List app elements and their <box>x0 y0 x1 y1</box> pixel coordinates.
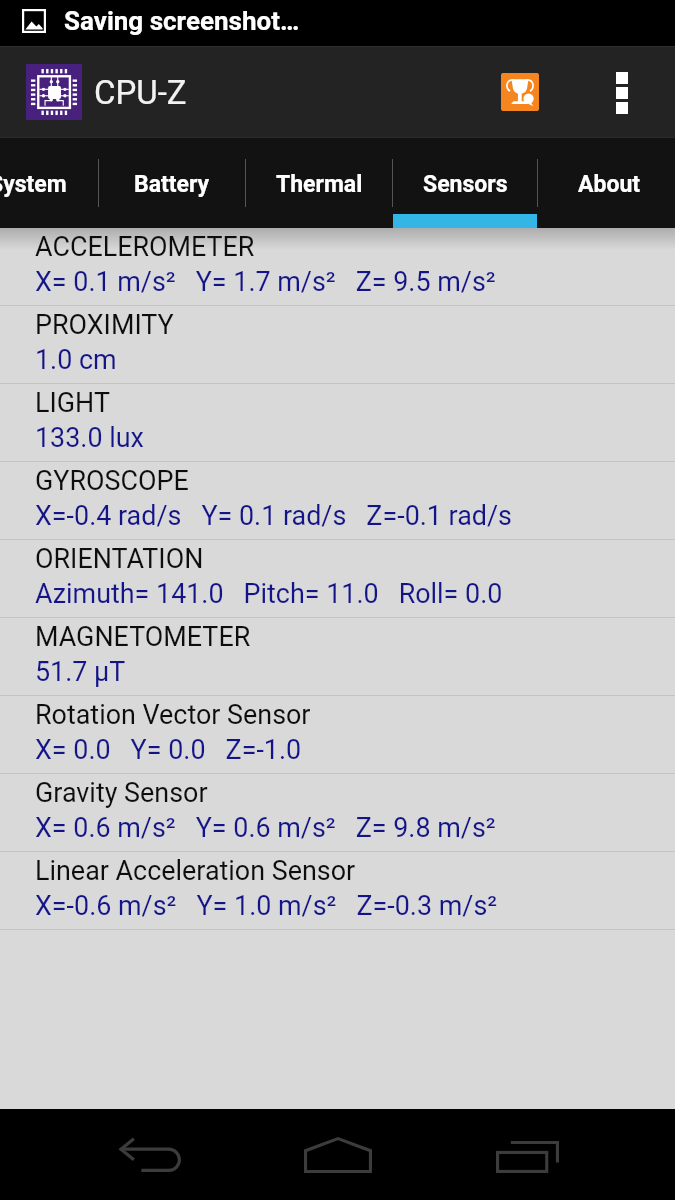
button[interactable]: MAGNETOMETER <box>0 618 675 695</box>
staticText: Linear Acceleration Sensor <box>35 855 356 887</box>
staticText: X= 0.1 m/s² Y= 1.7 m/s² Z= 9.5 m/s² <box>35 266 496 298</box>
staticText: About <box>578 171 641 198</box>
staticText: Gravity Sensor <box>35 777 208 809</box>
staticText: 1.0 cm <box>35 344 117 376</box>
staticText: Rotation Vector Sensor <box>35 699 311 731</box>
button[interactable]: More options <box>594 47 650 137</box>
button[interactable]: Back <box>98 1109 202 1200</box>
staticText: System <box>0 171 67 198</box>
staticText: Saving screenshot… <box>64 6 300 36</box>
staticText: Azimuth= 141.0 Pitch= 11.0 Roll= 0.0 <box>35 578 503 610</box>
button[interactable]: Sensors <box>393 138 537 228</box>
button[interactable]: ACCELEROMETER <box>0 228 675 305</box>
staticText: 133.0 lux <box>35 422 144 454</box>
button[interactable]: LIGHT <box>0 384 675 461</box>
staticText: X= 0.0 Y= 0.0 Z=-1.0 <box>35 734 302 766</box>
button[interactable]: Rotation Vector Sensor <box>0 696 675 773</box>
staticText: X=-0.6 m/s² Y= 1.0 m/s² Z=-0.3 m/s² <box>35 890 498 922</box>
button[interactable]: Gravity Sensor <box>0 774 675 851</box>
button[interactable]: Benchmark <box>490 62 550 122</box>
button[interactable]: ORIENTATION <box>0 540 675 617</box>
staticText: MAGNETOMETER <box>35 621 251 653</box>
staticText: X=-0.4 rad/s Y= 0.1 rad/s Z=-0.1 rad/s <box>35 500 512 532</box>
button[interactable]: About <box>538 138 675 228</box>
button[interactable]: Battery <box>99 138 245 228</box>
button[interactable]: Recent apps <box>475 1109 579 1200</box>
button[interactable]: PROXIMITY <box>0 306 675 383</box>
staticText: ACCELEROMETER <box>35 231 255 263</box>
button[interactable]: Thermal <box>246 138 392 228</box>
staticText: CPU-Z <box>94 73 187 112</box>
button[interactable]: System <box>0 138 98 228</box>
staticText: 51.7 µT <box>35 656 126 688</box>
button[interactable]: GYROSCOPE <box>0 462 675 539</box>
button[interactable]: Linear Acceleration Sensor <box>0 852 675 929</box>
staticText: GYROSCOPE <box>35 465 189 497</box>
staticText: Sensors <box>423 171 508 198</box>
staticText: Battery <box>134 171 210 198</box>
staticText: LIGHT <box>35 387 110 419</box>
button[interactable]: Home <box>286 1109 390 1200</box>
staticText: Thermal <box>276 171 363 198</box>
staticText: X= 0.6 m/s² Y= 0.6 m/s² Z= 9.8 m/s² <box>35 812 496 844</box>
staticText: PROXIMITY <box>35 309 174 341</box>
staticText: ORIENTATION <box>35 543 204 575</box>
